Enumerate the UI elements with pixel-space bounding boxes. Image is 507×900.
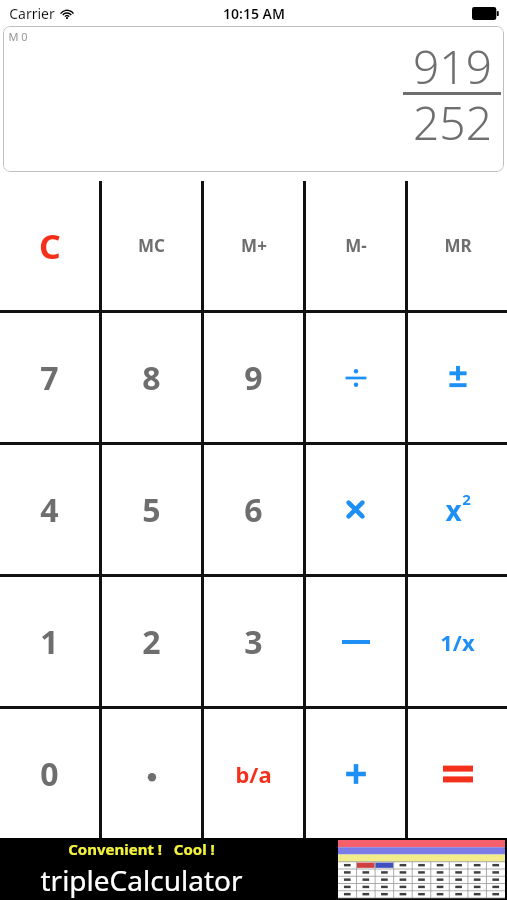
staticText: 1/x [440, 627, 475, 657]
button[interactable]: 1 [0, 577, 99, 706]
button[interactable]: 4 [0, 445, 99, 574]
staticText: 6 [244, 488, 263, 532]
staticText: 7 [40, 356, 59, 400]
staticText: 3 [244, 620, 263, 664]
staticText: MR [444, 234, 472, 257]
staticText: 2 [142, 620, 161, 664]
button[interactable] [306, 313, 405, 442]
button[interactable] [102, 709, 201, 838]
button[interactable]: M+ [204, 181, 303, 310]
button[interactable]: x [408, 445, 507, 574]
button[interactable]: 7 [0, 313, 99, 442]
button[interactable]: 2 [102, 577, 201, 706]
button[interactable]: 0 [0, 709, 99, 838]
staticText: Convenient ! Cool ! [68, 839, 215, 859]
button[interactable]: 8 [102, 313, 201, 442]
button[interactable]: 9 [204, 313, 303, 442]
staticText: Carrier [9, 4, 55, 23]
button[interactable]: 3 [204, 577, 303, 706]
staticText: 10:15 AM [223, 4, 285, 23]
staticText: 0 [40, 752, 59, 796]
button[interactable] [306, 709, 405, 838]
button[interactable] [408, 709, 507, 838]
staticText: 252 [413, 91, 492, 154]
staticText: 919 [413, 35, 492, 98]
staticText: M+ [241, 234, 267, 257]
staticText: b/a [235, 759, 272, 789]
staticText: M 0 [8, 29, 28, 44]
staticText: 9 [244, 356, 263, 400]
staticText: tripleCalculator [40, 861, 243, 899]
staticText: x [445, 491, 462, 529]
staticText: 4 [40, 488, 59, 532]
button[interactable]: MC [102, 181, 201, 310]
button[interactable] [408, 313, 507, 442]
button[interactable] [306, 445, 405, 574]
button[interactable]: MR [408, 181, 507, 310]
staticText: M- [345, 234, 367, 257]
staticText: 1 [40, 620, 59, 664]
staticText: 2 [462, 489, 471, 509]
button[interactable]: 6 [204, 445, 303, 574]
button[interactable]: 5 [102, 445, 201, 574]
button[interactable]: M- [306, 181, 405, 310]
staticText: C [39, 223, 61, 269]
button[interactable]: b/a [204, 709, 303, 838]
button[interactable] [306, 577, 405, 706]
button[interactable]: Convenient ! Cool ! [0, 838, 507, 900]
button[interactable]: 1/x [408, 577, 507, 706]
staticText: 8 [142, 356, 161, 400]
staticText: MC [138, 234, 165, 257]
button[interactable]: C [0, 181, 99, 310]
staticText: 5 [142, 488, 161, 532]
